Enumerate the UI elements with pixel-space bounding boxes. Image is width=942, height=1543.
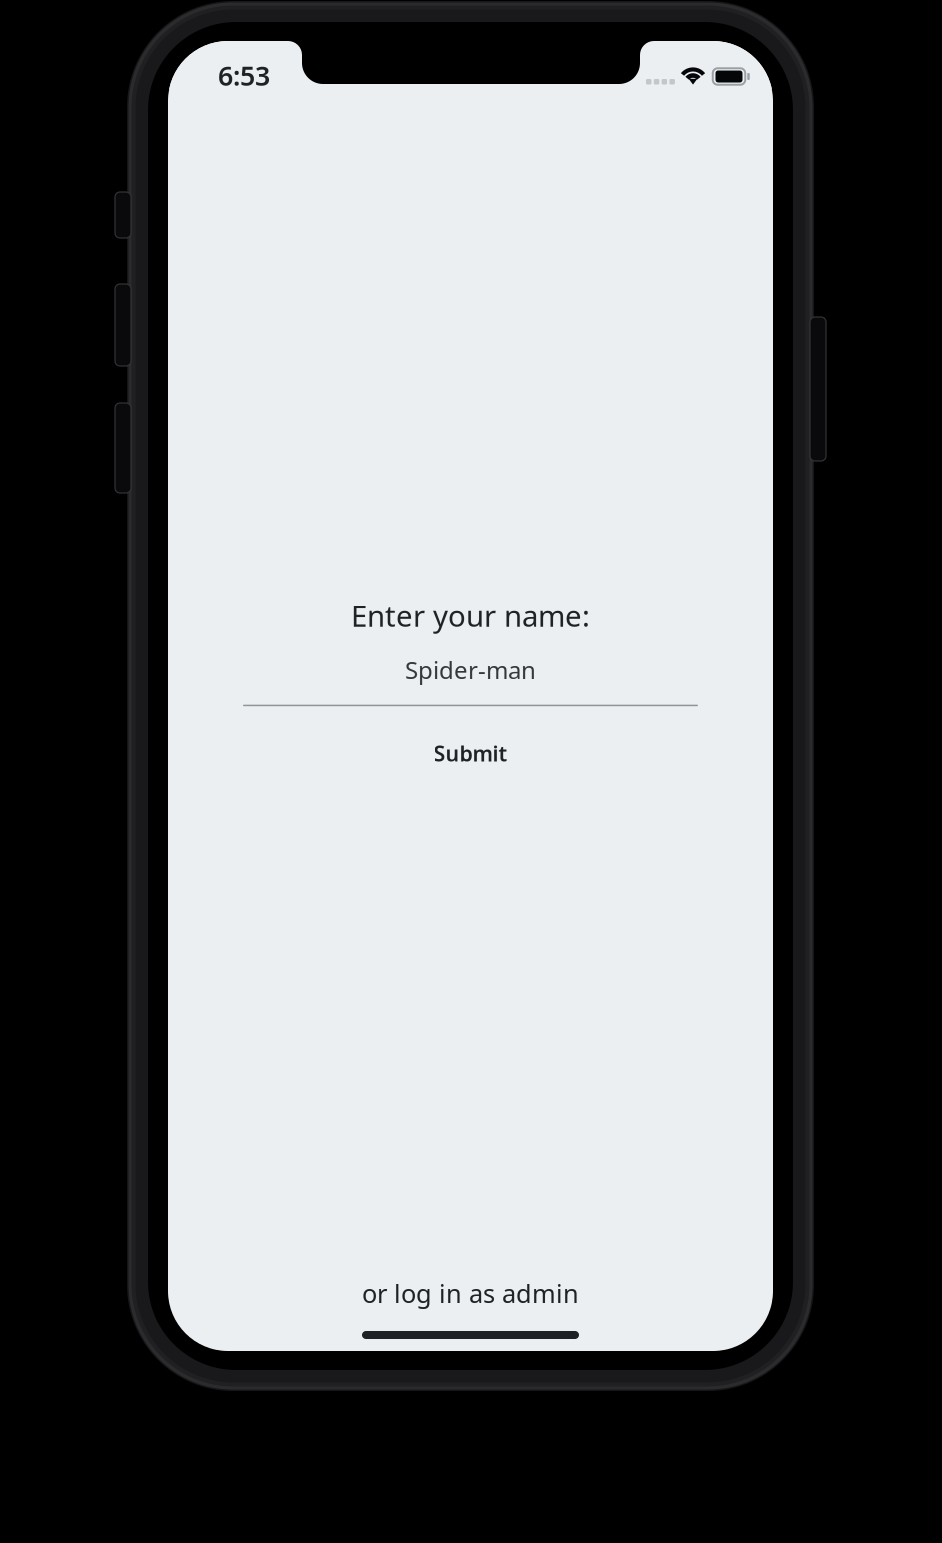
staticText: Enter your name: bbox=[351, 596, 590, 635]
button[interactable]: or log in as admin bbox=[350, 1271, 591, 1315]
button[interactable]: Submit bbox=[421, 734, 519, 772]
staticText: or log in as admin bbox=[362, 1276, 579, 1310]
staticText: 6:53 bbox=[218, 58, 270, 93]
staticText: Submit bbox=[433, 739, 507, 767]
staticText: Spider-man bbox=[405, 654, 536, 686]
